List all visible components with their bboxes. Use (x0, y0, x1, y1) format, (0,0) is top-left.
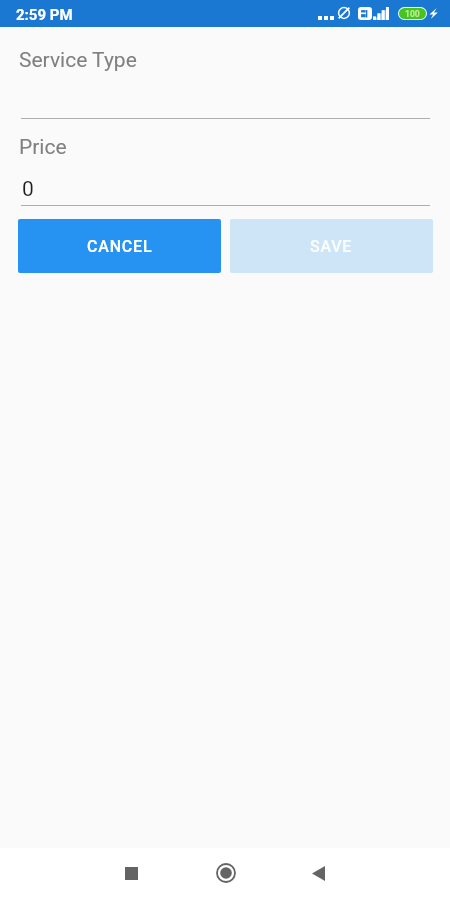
button[interactable]: SAVE (230, 219, 433, 273)
staticText: 0 (22, 177, 34, 202)
staticText: Service Type (19, 48, 137, 73)
staticText: CANCEL (87, 237, 153, 256)
staticText: SAVE (310, 237, 353, 256)
staticText: 2:59 PM (16, 6, 73, 24)
staticText: Price (19, 135, 67, 160)
button[interactable]: Back (294, 849, 342, 897)
button[interactable]: Recents (107, 849, 155, 897)
staticText: 100 (405, 9, 420, 19)
button[interactable]: CANCEL (18, 219, 221, 273)
button[interactable]: Home (202, 849, 250, 897)
